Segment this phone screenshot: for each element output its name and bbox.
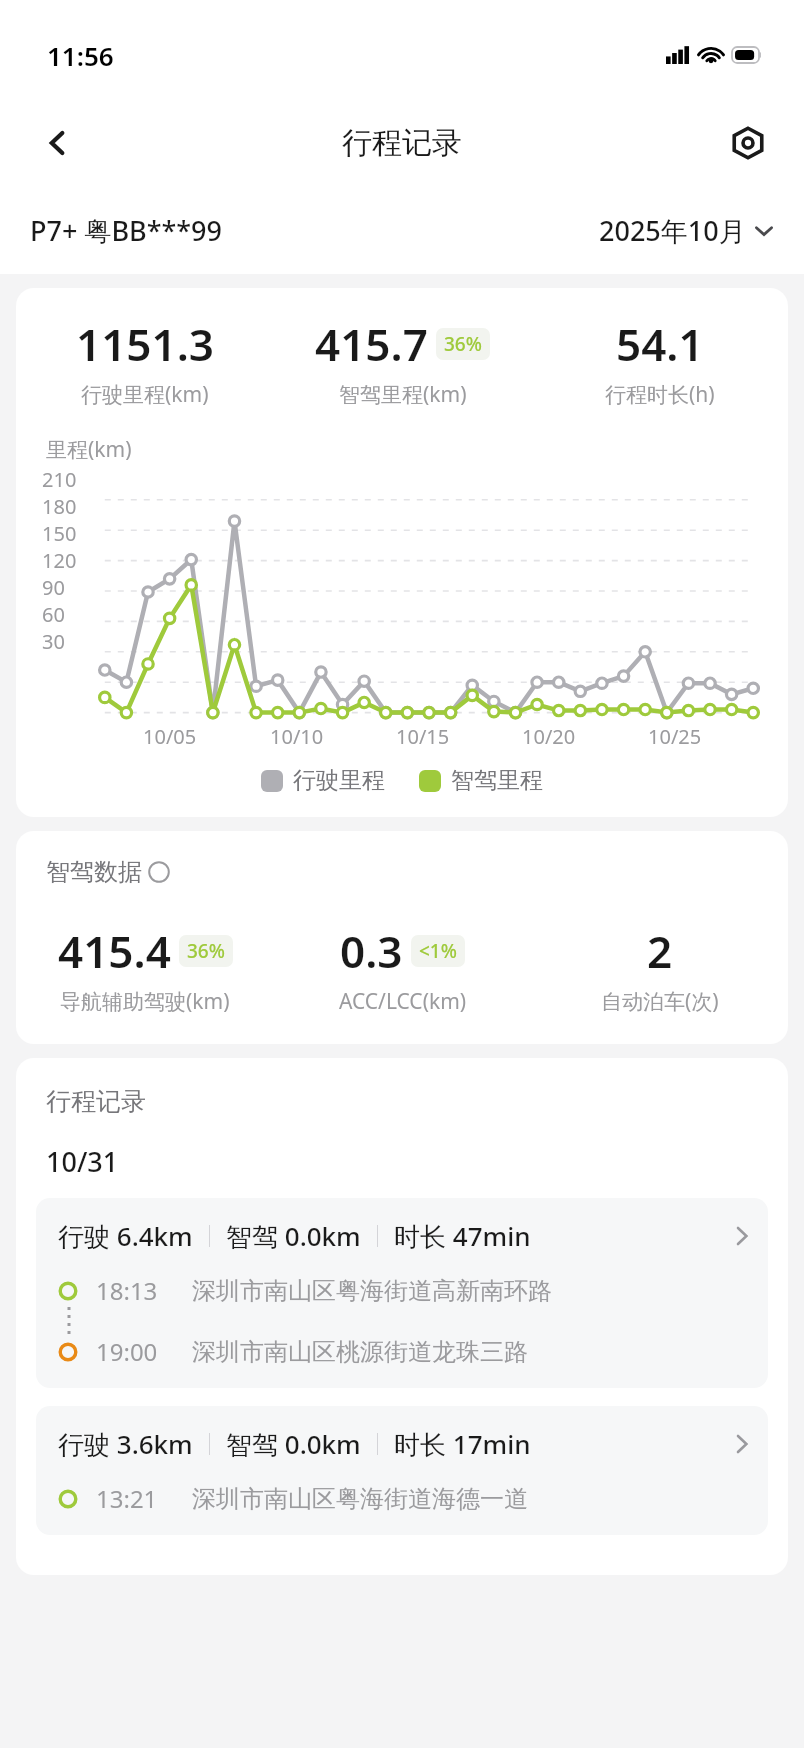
staticText: 行驶里程 <box>293 766 385 795</box>
staticText: 行驶里程(km) <box>81 380 209 409</box>
staticText: 深圳市南山区桃源街道龙珠三路 <box>192 1337 528 1367</box>
button[interactable]: Back <box>30 115 86 171</box>
staticText: 150 <box>42 520 77 547</box>
button[interactable]: 2025年10月 <box>599 212 774 249</box>
button[interactable]: 行驶 6.4km <box>36 1198 768 1388</box>
staticText: 10/15 <box>396 723 450 750</box>
staticText: 36% <box>444 331 482 357</box>
button[interactable]: 行驶里程 <box>261 766 385 795</box>
staticText: 行程记录 <box>342 124 462 162</box>
staticText: 415.7 <box>315 314 428 374</box>
staticText: 行程时长(h) <box>605 380 715 409</box>
button[interactable]: 0.3 <box>274 921 531 1016</box>
button[interactable]: 415.7 <box>274 314 531 409</box>
staticText: 2 <box>647 921 673 981</box>
staticText: 行驶 3.6km <box>58 1426 193 1462</box>
staticText: 13:21 <box>96 1482 158 1515</box>
staticText: 90 <box>42 574 65 601</box>
button[interactable]: 行驶 3.6km <box>36 1406 768 1535</box>
staticText: 时长 47min <box>394 1218 531 1254</box>
button[interactable]: 智驾数据 <box>46 857 170 887</box>
staticText: 19:00 <box>96 1335 158 1368</box>
staticText: 10/25 <box>648 723 702 750</box>
staticText: 时长 17min <box>394 1426 531 1462</box>
staticText: 里程(km) <box>46 435 132 464</box>
button[interactable]: 1151.3 <box>16 314 274 409</box>
staticText: ACC/LCC(km) <box>339 987 467 1016</box>
staticText: 120 <box>42 547 77 574</box>
staticText: 0.3 <box>340 921 403 981</box>
staticText: 2025年10月 <box>599 212 746 249</box>
button[interactable]: Settings <box>720 115 776 171</box>
button[interactable]: P7+ 粤BB***99 <box>30 212 222 249</box>
staticText: 自动泊车(次) <box>601 987 719 1016</box>
staticText: 深圳市南山区粤海街道高新南环路 <box>192 1276 552 1306</box>
staticText: 智驾数据 <box>46 857 142 887</box>
staticText: 智驾 0.0km <box>226 1218 361 1254</box>
staticText: 210 <box>42 466 77 493</box>
staticText: 11:56 <box>47 38 114 73</box>
staticText: 1151.3 <box>76 314 214 374</box>
staticText: 10/05 <box>143 723 197 750</box>
staticText: 智驾里程(km) <box>339 380 467 409</box>
button[interactable]: 54.1 <box>531 314 788 409</box>
staticText: 60 <box>42 601 65 628</box>
staticText: 导航辅助驾驶(km) <box>60 987 230 1016</box>
button[interactable]: 415.4 <box>16 921 274 1016</box>
staticText: 54.1 <box>616 314 704 374</box>
staticText: 智驾 0.0km <box>226 1426 361 1462</box>
staticText: 180 <box>42 493 77 520</box>
staticText: 深圳市南山区粤海街道海德一道 <box>192 1484 528 1514</box>
staticText: 30 <box>42 628 65 655</box>
staticText: 行程记录 <box>46 1086 146 1117</box>
staticText: 10/31 <box>46 1143 119 1180</box>
staticText: 10/20 <box>522 723 576 750</box>
staticText: 415.4 <box>58 921 171 981</box>
button[interactable]: 2 <box>531 921 788 1016</box>
staticText: 36% <box>187 938 225 964</box>
staticText: 智驾里程 <box>451 766 543 795</box>
staticText: 18:13 <box>96 1274 158 1307</box>
staticText: 10/10 <box>270 723 324 750</box>
staticText: P7+ 粤BB***99 <box>30 212 222 249</box>
button[interactable]: 智驾里程 <box>419 766 543 795</box>
staticText: <1% <box>419 938 457 964</box>
staticText: 行驶 6.4km <box>58 1218 193 1254</box>
